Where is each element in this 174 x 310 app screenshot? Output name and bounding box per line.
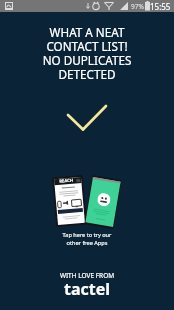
staticText: 97% xyxy=(131,2,144,11)
staticText: WHAT A NEAT CONTACT LIST! NO DUPLICATES … xyxy=(0,24,174,82)
staticText: WITH LOVE FROM xyxy=(0,271,174,280)
staticText: REACH xyxy=(59,178,73,185)
staticText: 15:55 xyxy=(150,1,171,12)
button[interactable]: Tap here to try our other free Apps xyxy=(0,0,174,310)
staticText: Tap here to try our other free Apps xyxy=(0,231,174,246)
staticText: tactel xyxy=(0,278,174,300)
